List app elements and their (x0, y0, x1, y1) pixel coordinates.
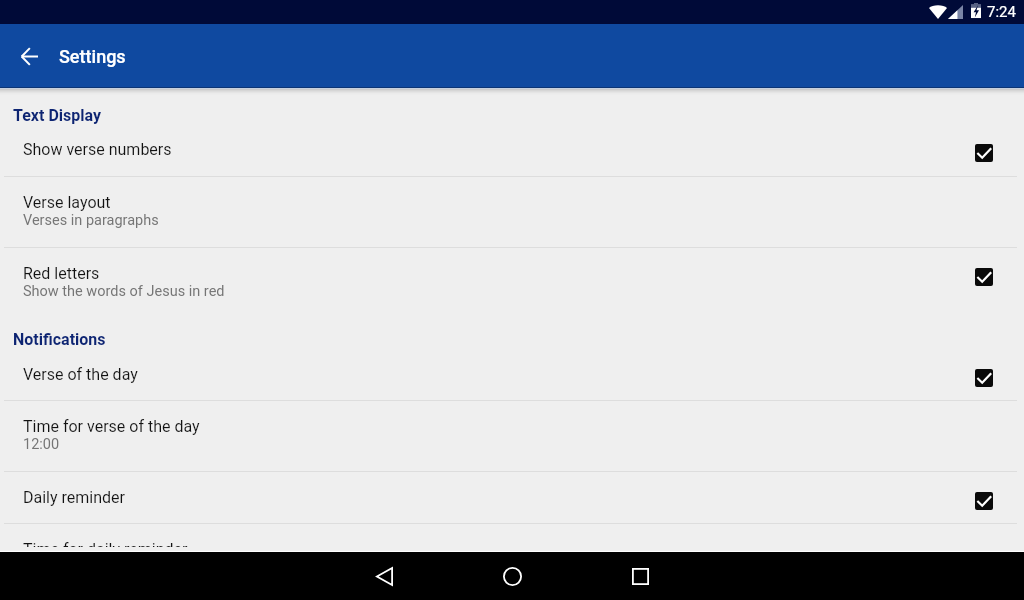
staticText: Show verse numbers (23, 140, 172, 159)
button[interactable]: Verse of the day (0, 349, 1024, 400)
button[interactable]: Back (360, 552, 408, 600)
staticText: Show the words of Jesus in red (23, 283, 225, 300)
staticText: Settings (59, 46, 126, 67)
staticText: Verses in paragraphs (23, 212, 159, 229)
button[interactable]: Red letters (0, 248, 1024, 318)
button[interactable]: Time for verse of the day (0, 401, 1024, 471)
staticText: Time for verse of the day (23, 417, 200, 436)
button[interactable]: Verse layout (0, 177, 1024, 247)
button[interactable]: Show verse numbers (0, 124, 1024, 176)
staticText: Verse of the day (23, 365, 138, 384)
staticText: Notifications (13, 330, 106, 349)
staticText: Red letters (23, 264, 100, 283)
staticText: Text Display (13, 106, 102, 124)
button[interactable]: Navigate up (8, 36, 48, 76)
staticText: 12:00 (23, 436, 60, 453)
button[interactable]: Daily reminder (0, 472, 1024, 523)
button[interactable]: Home (488, 552, 536, 600)
staticText: Time for daily reminder (23, 540, 188, 547)
button[interactable]: Recent apps (616, 552, 664, 600)
staticText: Verse layout (23, 193, 111, 212)
staticText: 7:24 (987, 3, 1016, 21)
staticText: Daily reminder (23, 488, 125, 507)
button[interactable]: Time for daily reminder (0, 524, 1024, 547)
